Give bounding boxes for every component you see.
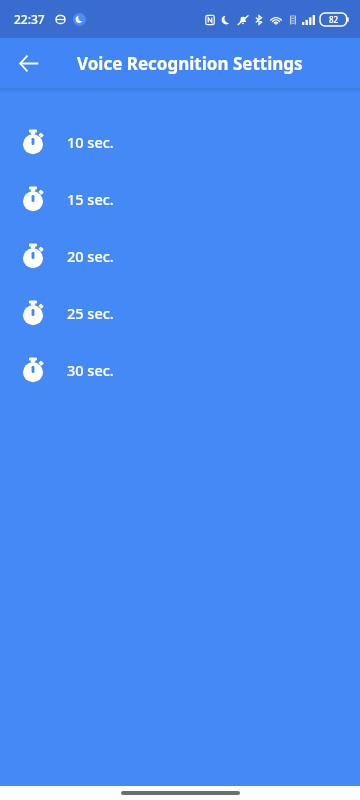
staticText: 20 sec. [67, 246, 114, 266]
button[interactable]: 25 sec. [0, 284, 360, 341]
staticText: Voice Recognition Settings [77, 52, 303, 75]
staticText: 15 sec. [67, 189, 114, 209]
staticText: 25 sec. [67, 303, 114, 323]
button[interactable]: Back [8, 43, 48, 83]
button[interactable]: 30 sec. [0, 341, 360, 398]
button[interactable]: 20 sec. [0, 227, 360, 284]
staticText: 30 sec. [67, 360, 114, 380]
staticText: 82 [329, 14, 339, 25]
staticText: 22:37 [14, 11, 45, 27]
button[interactable]: 10 sec. [0, 113, 360, 170]
staticText: 10 sec. [67, 132, 114, 152]
button[interactable]: 15 sec. [0, 170, 360, 227]
